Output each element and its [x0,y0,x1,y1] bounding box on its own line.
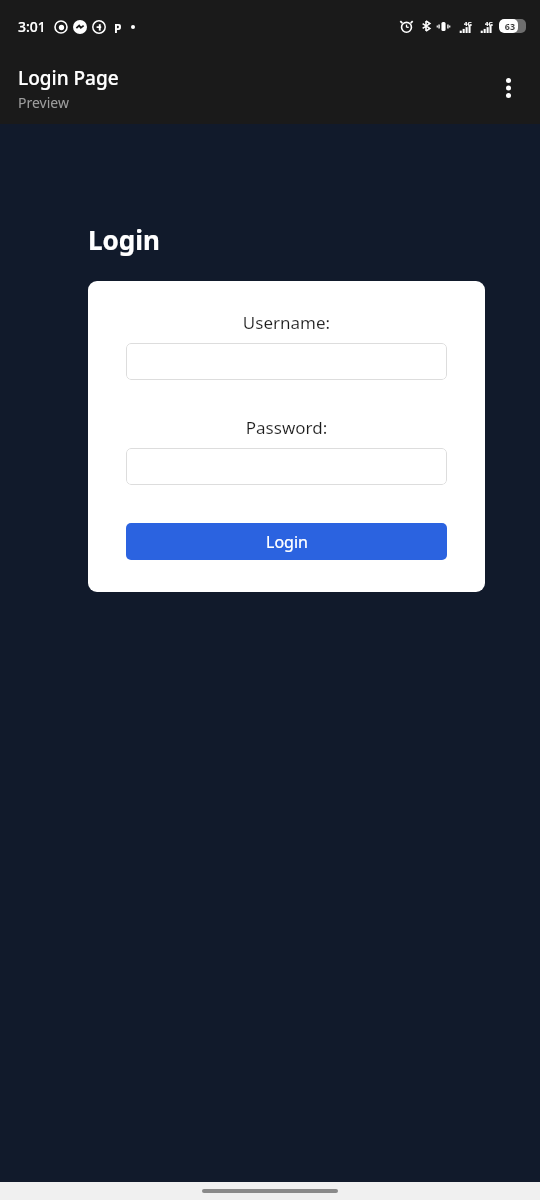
staticText: Login Page [18,65,119,91]
button[interactable]: Text input [126,343,447,380]
staticText: Login [266,531,308,553]
staticText: Preview [18,93,69,112]
staticText: 63 [499,20,521,32]
staticText: Username: [126,311,447,334]
button[interactable]: Login [126,523,447,560]
staticText: 4G [464,20,472,28]
staticText: Login [88,222,160,257]
button[interactable]: More options [484,64,532,112]
staticText: 3:01 [18,17,46,36]
staticText: 4G [485,20,493,28]
staticText: P [114,20,122,34]
button[interactable]: Text input [126,448,447,485]
staticText: Password: [126,416,447,439]
